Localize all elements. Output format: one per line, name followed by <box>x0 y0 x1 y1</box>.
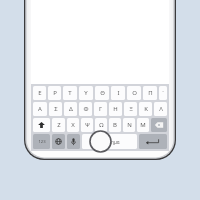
staticText: Χ <box>71 121 75 129</box>
button[interactable]: ΄ <box>159 86 167 100</box>
staticText: Π <box>148 89 153 97</box>
button[interactable]: Λ <box>154 102 167 116</box>
staticText: Δ <box>69 105 73 113</box>
staticText: Κ <box>144 105 148 113</box>
button[interactable]: Change keyboard <box>52 134 65 149</box>
staticText: Φ <box>83 105 89 113</box>
staticText: Ψ <box>85 121 90 129</box>
button[interactable]: Υ <box>79 86 93 100</box>
staticText: Η <box>113 105 118 113</box>
button[interactable]: Π <box>143 86 157 100</box>
staticText: Γ <box>99 105 102 113</box>
staticText: Ε <box>38 89 42 97</box>
button[interactable]: Return <box>139 134 167 149</box>
button[interactable]: Ν <box>123 118 135 132</box>
staticText: Ι <box>117 89 120 97</box>
button[interactable]: Θ <box>95 86 109 100</box>
staticText: Σ <box>54 105 58 113</box>
button[interactable]: Χ <box>67 118 79 132</box>
button[interactable]: Τ <box>63 86 77 100</box>
button[interactable]: Γ <box>94 102 107 116</box>
button[interactable]: Κ <box>139 102 152 116</box>
button[interactable]: Ω <box>95 118 107 132</box>
staticText: διάστημα <box>99 139 120 145</box>
button[interactable]: Η <box>109 102 122 116</box>
button[interactable]: Α <box>33 102 47 116</box>
staticText: Θ <box>100 89 105 97</box>
button[interactable]: Ζ <box>52 118 65 132</box>
staticText: Ρ <box>53 89 57 97</box>
button[interactable]: διάστημα <box>82 134 137 149</box>
button[interactable]: Backspace <box>151 118 167 132</box>
button[interactable]: Ψ <box>81 118 93 132</box>
staticText: Μ <box>140 121 146 129</box>
button[interactable]: Dictation <box>67 134 80 149</box>
button[interactable]: Φ <box>79 102 92 116</box>
button[interactable]: 123 <box>33 134 50 149</box>
staticText: 123 <box>38 139 46 145</box>
staticText: Β <box>113 121 117 129</box>
button[interactable]: Ι <box>111 86 125 100</box>
button[interactable]: Ε <box>33 86 46 100</box>
button[interactable]: Σ <box>49 102 62 116</box>
button[interactable]: Shift <box>33 118 50 132</box>
staticText: Τ <box>68 89 72 97</box>
staticText: ΄ <box>162 90 164 97</box>
staticText: Ξ <box>129 105 133 113</box>
staticText: Α <box>38 105 42 113</box>
button[interactable]: Ο <box>127 86 141 100</box>
button[interactable]: Home <box>89 130 112 153</box>
staticText: Ω <box>99 121 104 129</box>
button[interactable]: Μ <box>137 118 149 132</box>
staticText: Ν <box>127 121 132 129</box>
staticText: Ζ <box>57 121 61 129</box>
staticText: Υ <box>84 89 88 97</box>
button[interactable]: Β <box>109 118 121 132</box>
staticText: Ο <box>132 89 137 97</box>
button[interactable]: Ξ <box>124 102 137 116</box>
button[interactable]: Δ <box>64 102 77 116</box>
staticText: Λ <box>159 105 163 113</box>
button[interactable]: Ρ <box>48 86 61 100</box>
